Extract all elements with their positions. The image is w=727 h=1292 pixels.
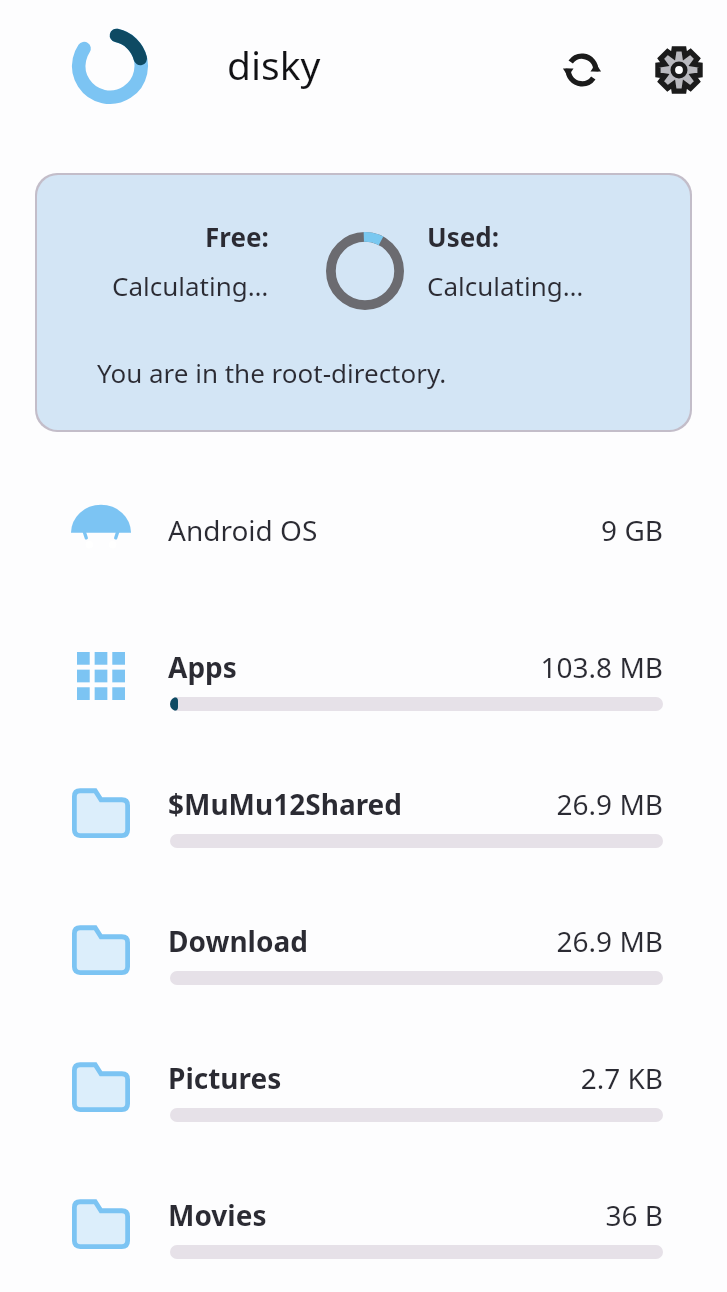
button[interactable]: Movies [0,1175,727,1292]
staticText: 36 B [605,1196,663,1234]
button[interactable]: Download [0,901,727,1038]
staticText: Calculating… [427,268,584,303]
staticText: Used: [427,219,499,254]
button[interactable]: Android OS [0,490,727,627]
button[interactable]: Free: [37,175,690,430]
staticText: 26.9 MB [556,785,663,823]
staticText: Free: [205,219,269,254]
button[interactable]: $MuMu12Shared [0,764,727,901]
staticText: 26.9 MB [556,922,663,960]
button[interactable]: Apps [0,627,727,764]
staticText: You are in the root-directory. [97,355,447,390]
staticText: disky [227,38,321,91]
staticText: $MuMu12Shared [168,785,403,823]
staticText: Apps [168,648,237,686]
staticText: Download [168,922,308,960]
button[interactable]: Pictures [0,1038,727,1175]
staticText: Movies [168,1196,267,1234]
button[interactable]: Refresh [548,36,616,104]
staticText: Pictures [168,1059,282,1097]
staticText: 9 GB [601,511,663,549]
staticText: Calculating… [112,268,269,303]
staticText: 2.7 KB [580,1059,663,1097]
staticText: Android OS [168,511,318,549]
staticText: 103.8 MB [540,648,663,686]
button[interactable]: Settings [645,36,713,104]
